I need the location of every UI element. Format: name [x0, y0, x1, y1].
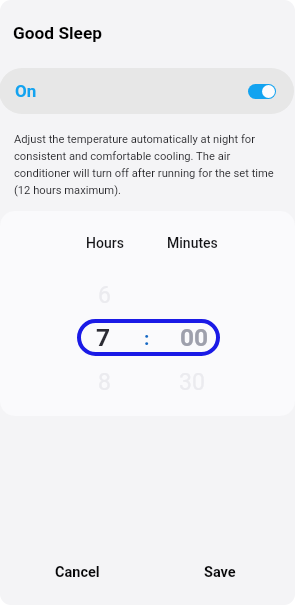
other: Toggle Good Sleep	[248, 84, 276, 99]
staticText: 00	[180, 323, 209, 352]
button[interactable]: Cancel	[14, 551, 140, 593]
button[interactable]: On	[0, 68, 294, 114]
staticText: 30	[179, 369, 205, 396]
staticText: 7	[96, 323, 111, 352]
staticText: 8	[98, 369, 111, 396]
staticText: On	[15, 81, 37, 101]
staticText: Save	[204, 564, 236, 581]
staticText: Minutes	[167, 235, 218, 251]
staticText: :	[144, 327, 150, 349]
staticText: Hours	[86, 235, 124, 251]
button[interactable]: Selected time 7:00	[77, 319, 220, 356]
staticText: Adjust the temperature automatically at …	[14, 133, 276, 197]
button[interactable]: Save	[157, 551, 283, 593]
staticText: Cancel	[55, 564, 100, 581]
staticText: Good Sleep	[13, 23, 103, 43]
staticText: 6	[98, 282, 111, 309]
